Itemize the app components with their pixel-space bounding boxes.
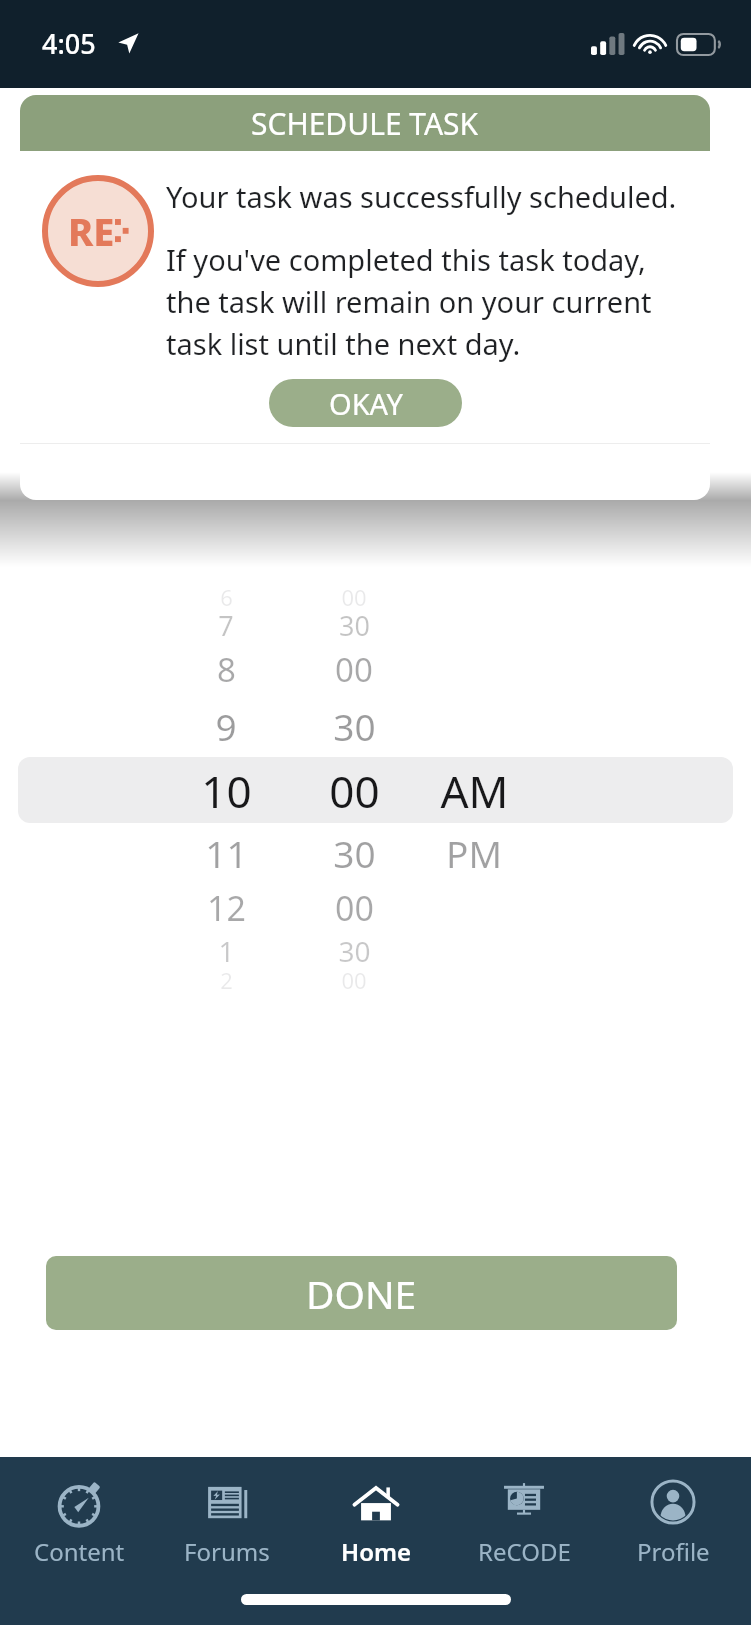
button[interactable]: Forums	[157, 1473, 297, 1570]
button[interactable]: 30	[244, 927, 464, 975]
button[interactable]: 9	[116, 694, 336, 757]
button[interactable]: 11	[116, 821, 336, 884]
staticText: 2	[220, 965, 233, 995]
button[interactable]: 30	[244, 602, 464, 648]
staticText: 30	[333, 701, 376, 751]
staticText: 30	[338, 932, 371, 970]
button[interactable]: 00	[244, 641, 464, 697]
other: Forums	[200, 1475, 254, 1529]
staticText: PM	[446, 828, 502, 878]
button[interactable]: PM	[364, 821, 584, 884]
button[interactable]: 8	[116, 641, 336, 697]
button[interactable]: Content	[9, 1473, 149, 1570]
staticText: Content	[34, 1535, 125, 1568]
staticText: 1	[218, 932, 235, 970]
staticText: 30	[333, 828, 376, 878]
staticText: Your task was successfully scheduled.	[166, 177, 677, 216]
staticText: 00	[335, 647, 373, 692]
button[interactable]: 30	[244, 694, 464, 757]
staticText: 00	[341, 965, 367, 995]
button[interactable]: 12	[116, 879, 336, 937]
staticText: ReCODE	[478, 1535, 571, 1568]
button[interactable]: 00	[244, 753, 464, 828]
staticText: AM	[440, 761, 509, 821]
other: Content	[52, 1475, 106, 1529]
staticText: Forums	[184, 1535, 270, 1568]
staticText: 7	[218, 607, 234, 644]
staticText: 00	[335, 885, 374, 931]
staticText: Home	[341, 1535, 412, 1568]
staticText: 00	[341, 582, 367, 612]
button[interactable]: Profile	[603, 1473, 743, 1570]
button[interactable]: Home	[306, 1473, 446, 1570]
button[interactable]: OKAY	[269, 379, 462, 427]
staticText: 9	[215, 701, 237, 751]
staticText: 00	[329, 761, 380, 821]
staticText: DONE	[306, 1267, 417, 1320]
staticText: 4:05	[42, 25, 96, 62]
other: Home	[349, 1475, 403, 1529]
button[interactable]: ReCODE	[454, 1473, 594, 1570]
button[interactable]: AM	[364, 753, 584, 828]
button[interactable]: 00	[244, 879, 464, 937]
staticText: 30	[339, 607, 370, 644]
button[interactable]: 30	[244, 821, 464, 884]
staticText: RE	[68, 205, 115, 257]
staticText: SCHEDULE TASK	[251, 103, 479, 144]
button[interactable]: DONE	[46, 1256, 677, 1330]
button[interactable]: 1	[116, 927, 336, 975]
staticText: 12	[207, 885, 246, 931]
staticText: OKAY	[329, 384, 403, 423]
staticText: Profile	[637, 1535, 710, 1568]
staticText: 6	[220, 582, 233, 612]
button[interactable]: 7	[116, 602, 336, 648]
staticText: 8	[217, 647, 236, 692]
button[interactable]: 10	[116, 753, 336, 828]
staticText: 10	[201, 761, 252, 821]
staticText: 11	[205, 828, 248, 878]
other: ReCODE	[497, 1475, 551, 1529]
other: Profile	[646, 1475, 700, 1529]
staticText: If you've completed this task today, the…	[166, 240, 696, 363]
